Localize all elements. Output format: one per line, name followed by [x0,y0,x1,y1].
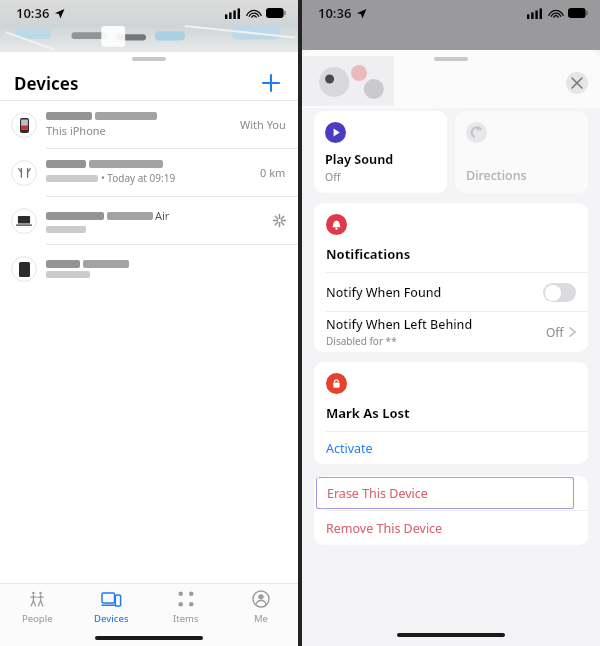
staticText: Air [155,208,170,223]
staticText: Directions [466,167,527,184]
staticText: Erase This Device [327,485,428,502]
button[interactable]: Erase This Device [316,477,586,509]
button[interactable]: Add device [258,70,284,96]
staticText: Notify When Found [326,284,442,301]
button[interactable]: Remove This Device [314,511,588,545]
staticText: Activate [326,440,373,457]
staticText: Notify When Left Behind [326,316,473,333]
staticText: Disabled for ** [326,334,397,348]
button[interactable]: People [0,584,74,630]
button[interactable]: Activate [314,432,588,464]
button[interactable]: Devices [74,584,148,630]
staticText: Devices [94,612,129,625]
button[interactable]: Notify When Found [314,273,588,311]
staticText: People [22,612,53,625]
button[interactable]: Directions [455,111,588,193]
staticText: This iPhone [46,123,106,138]
staticText: 10:36 [16,4,50,22]
staticText: Notifications [326,245,411,263]
button[interactable]: Close [566,72,588,94]
button[interactable] [0,245,298,292]
staticText: Play Sound [325,151,394,168]
button[interactable] [543,283,576,302]
staticText: Mark As Lost [326,404,410,422]
button[interactable]: This iPhone [0,101,298,148]
button[interactable]: Notify When Left Behind [314,312,588,352]
staticText: Devices [14,72,79,95]
staticText: Remove This Device [326,520,443,537]
staticText: Off [325,170,341,184]
staticText: • Today at 09:19 [101,171,176,185]
staticText: Me [254,612,268,625]
staticText: 0 km [260,165,286,180]
button[interactable]: Play Sound [314,111,447,193]
button[interactable]: Me [223,584,298,630]
staticText: Off [546,324,564,340]
staticText: 10:36 [318,4,352,22]
button[interactable]: • Today at 09:19 [0,149,298,196]
staticText: Items [173,612,199,625]
staticText: With You [240,117,286,132]
button[interactable]: Air [0,197,298,244]
button[interactable]: Items [148,584,223,630]
